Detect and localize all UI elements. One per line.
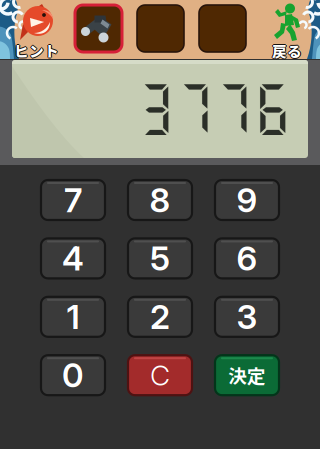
staticText: 9 (236, 180, 257, 220)
staticText: 4 (62, 238, 84, 278)
button[interactable]: 6 (215, 238, 279, 278)
button[interactable]: 5 (128, 238, 192, 278)
staticText: ヒント (14, 39, 59, 60)
staticText: ヒント (14, 40, 59, 61)
button[interactable]: 4 (41, 238, 105, 278)
staticText: 決定 (228, 362, 266, 389)
button[interactable]: 1 (41, 297, 105, 337)
staticText: 戻る (272, 40, 302, 61)
button[interactable]: 2 (128, 297, 192, 337)
staticText: 1 (66, 297, 79, 337)
staticText: 0 (62, 355, 84, 395)
staticText: C (150, 358, 170, 392)
staticText: ヒント (15, 40, 60, 61)
staticText: 戻る (271, 40, 301, 61)
button[interactable]: Binoculars (75, 5, 122, 52)
staticText: 7 (64, 180, 82, 220)
staticText: ヒント (13, 40, 58, 61)
staticText: 5 (150, 238, 170, 278)
staticText: 戻る (272, 41, 302, 62)
button[interactable]: 8 (128, 180, 192, 220)
staticText: 6 (236, 238, 257, 278)
staticText: 2 (150, 297, 170, 337)
button[interactable]: 7 (41, 180, 105, 220)
staticText: 3776 (136, 76, 292, 140)
button[interactable]: Empty slot (137, 5, 184, 52)
button[interactable]: C (128, 355, 192, 395)
button[interactable]: 3 (215, 297, 279, 337)
staticText: 戻る (272, 39, 302, 60)
staticText: 8 (149, 180, 170, 220)
button[interactable]: Hint (0, 0, 72, 59)
staticText: ヒント (14, 41, 59, 62)
button[interactable]: 9 (215, 180, 279, 220)
staticText: 戻る (273, 40, 303, 61)
button[interactable]: Empty slot (199, 5, 246, 52)
button[interactable]: 決定 (215, 355, 279, 395)
button[interactable]: Back (268, 0, 318, 59)
button[interactable]: 0 (41, 355, 105, 395)
staticText: 3 (236, 297, 257, 337)
